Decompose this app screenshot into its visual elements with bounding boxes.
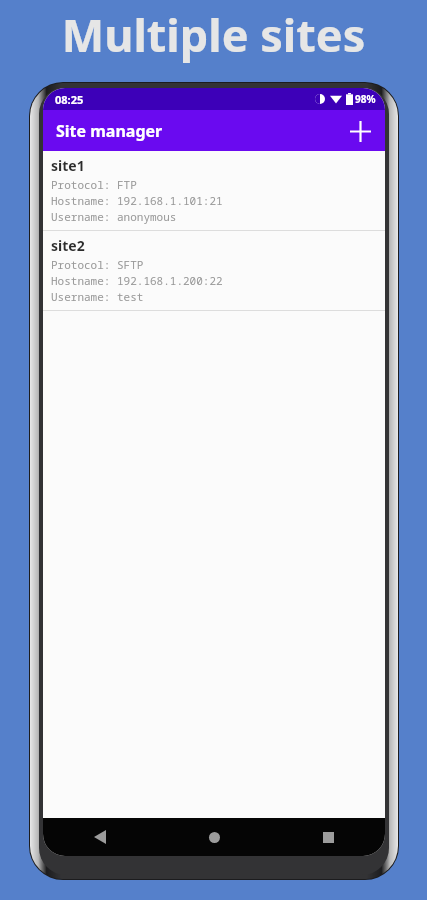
staticText: Site manager bbox=[56, 120, 163, 142]
staticText: site1 bbox=[51, 156, 85, 175]
staticText: 08:25 bbox=[55, 92, 84, 107]
staticText: 98% bbox=[355, 92, 376, 106]
staticText: Hostname: 192.168.1.101:21 bbox=[51, 193, 223, 208]
staticText: Username: anonymous bbox=[51, 209, 177, 224]
button[interactable]: Add site bbox=[343, 114, 377, 148]
button[interactable]: Home bbox=[157, 818, 271, 856]
button[interactable]: site1 bbox=[43, 151, 385, 230]
staticText: Hostname: 192.168.1.200:22 bbox=[51, 273, 223, 288]
button[interactable]: Recents bbox=[271, 818, 385, 856]
button[interactable]: site2 bbox=[43, 231, 385, 310]
staticText: Username: test bbox=[51, 289, 144, 304]
staticText: Multiple sites bbox=[0, 4, 427, 65]
button[interactable]: Back bbox=[43, 818, 157, 856]
staticText: Protocol: FTP bbox=[51, 177, 137, 192]
staticText: site2 bbox=[51, 236, 85, 255]
staticText: Protocol: SFTP bbox=[51, 257, 144, 272]
